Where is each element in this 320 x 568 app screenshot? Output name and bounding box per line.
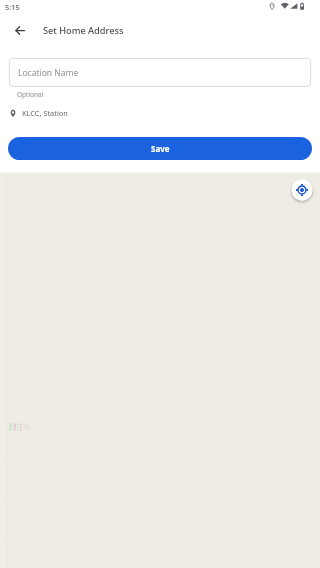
button[interactable]: Save bbox=[8, 137, 312, 160]
button[interactable]: Back bbox=[6, 16, 34, 44]
staticText: KLCC, Station bbox=[22, 108, 68, 118]
staticText: Set Home Address bbox=[43, 24, 124, 37]
button[interactable]: KLCC, Station bbox=[10, 108, 68, 118]
button[interactable]: My location bbox=[289, 177, 315, 203]
staticText: Location Name bbox=[18, 67, 79, 79]
staticText: Save bbox=[151, 143, 170, 154]
staticText: 5:15 bbox=[5, 2, 20, 12]
button[interactable]: Location Name bbox=[9, 58, 311, 87]
staticText: Optional bbox=[17, 90, 44, 99]
